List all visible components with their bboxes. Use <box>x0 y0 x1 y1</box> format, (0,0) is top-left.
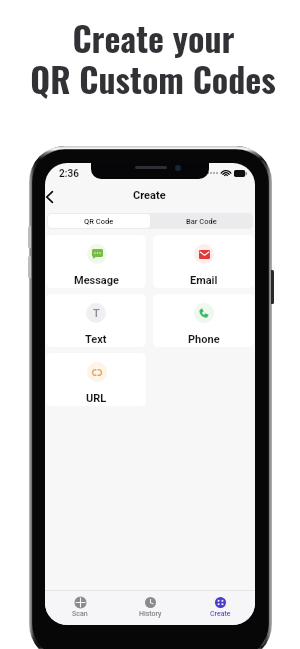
staticText: URL <box>86 392 107 405</box>
button[interactable]: Email <box>153 235 254 288</box>
button[interactable]: QR Code <box>48 214 150 228</box>
staticText: Create your <box>72 12 235 62</box>
button[interactable]: Phone <box>153 294 254 347</box>
staticText: Create <box>133 189 166 202</box>
staticText: Message <box>74 274 119 287</box>
staticText: 2:36 <box>59 168 79 180</box>
staticText: Text <box>85 333 107 346</box>
button[interactable]: Scan <box>45 591 115 625</box>
button[interactable]: URL <box>46 353 146 406</box>
staticText: T <box>93 307 100 320</box>
button[interactable]: Back <box>45 186 63 208</box>
button[interactable]: Bar Code <box>150 214 252 228</box>
staticText: History <box>139 610 162 618</box>
staticText: Phone <box>188 333 220 346</box>
button[interactable]: T <box>46 294 146 347</box>
staticText: Scan <box>72 610 88 618</box>
button[interactable]: Create <box>185 591 255 625</box>
staticText: Email <box>190 274 218 287</box>
button[interactable]: Message <box>46 235 146 288</box>
staticText: QR Custom Codes <box>30 53 276 103</box>
staticText: QR Code <box>84 217 114 226</box>
button[interactable]: History <box>115 591 185 625</box>
staticText: Create <box>210 610 231 618</box>
staticText: Bar Code <box>186 217 217 226</box>
